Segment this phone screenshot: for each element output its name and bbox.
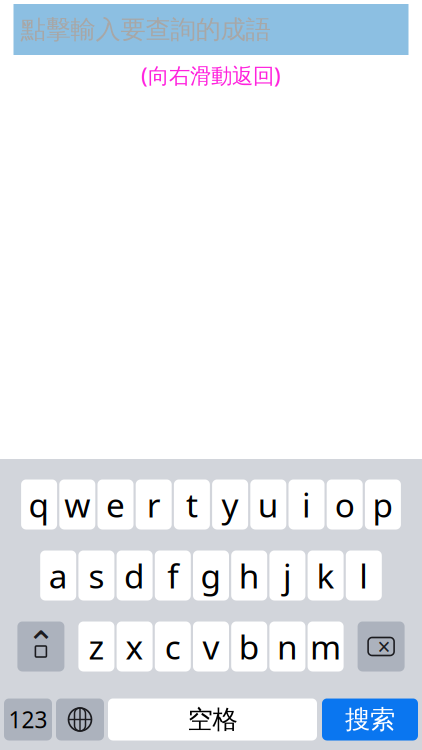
- staticText: c: [165, 624, 181, 669]
- staticText: b: [239, 624, 260, 669]
- staticText: x: [126, 624, 144, 669]
- button[interactable]: 搜索: [322, 698, 418, 740]
- staticText: r: [147, 482, 161, 527]
- staticText: u: [258, 482, 279, 527]
- staticText: (向右滑動返回): [141, 61, 281, 89]
- staticText: w: [64, 482, 90, 527]
- staticText: z: [88, 624, 104, 669]
- button[interactable]: g: [193, 550, 229, 600]
- button[interactable]: d: [117, 550, 153, 600]
- staticText: e: [106, 482, 125, 527]
- staticText: k: [317, 553, 335, 598]
- button[interactable]: n: [269, 621, 305, 671]
- staticText: v: [202, 624, 219, 669]
- button[interactable]: a: [40, 550, 76, 600]
- button[interactable]: v: [193, 621, 229, 671]
- staticText: 搜索: [345, 704, 395, 735]
- button[interactable]: Delete: [358, 621, 405, 671]
- staticText: p: [372, 482, 393, 527]
- button[interactable]: 點擊輸入要查詢的成語: [13, 4, 408, 55]
- button[interactable]: i: [288, 479, 324, 529]
- button[interactable]: l: [346, 550, 382, 600]
- button[interactable]: x: [117, 621, 153, 671]
- staticText: i: [302, 482, 311, 527]
- button[interactable]: q: [21, 479, 57, 529]
- button[interactable]: Shift: [17, 621, 64, 671]
- button[interactable]: Next keyboard: [56, 698, 104, 740]
- button[interactable]: h: [231, 550, 267, 600]
- staticText: s: [88, 553, 104, 598]
- staticText: a: [49, 553, 68, 598]
- staticText: 點擊輸入要查詢的成語: [20, 14, 270, 45]
- button[interactable]: e: [97, 479, 133, 529]
- button[interactable]: w: [59, 479, 95, 529]
- button[interactable]: b: [231, 621, 267, 671]
- button[interactable]: u: [250, 479, 286, 529]
- staticText: f: [167, 553, 178, 598]
- staticText: q: [29, 482, 50, 527]
- button[interactable]: 空格: [108, 698, 317, 740]
- staticText: d: [124, 553, 145, 598]
- staticText: 空格: [187, 704, 237, 735]
- staticText: t: [186, 482, 198, 527]
- staticText: j: [283, 553, 292, 598]
- staticText: g: [200, 553, 221, 598]
- staticText: l: [359, 553, 368, 598]
- staticText: ×: [378, 631, 391, 661]
- button[interactable]: t: [174, 479, 210, 529]
- button[interactable]: p: [365, 479, 401, 529]
- button[interactable]: o: [327, 479, 363, 529]
- button[interactable]: r: [136, 479, 172, 529]
- staticText: y: [222, 482, 239, 527]
- staticText: o: [335, 482, 355, 527]
- staticText: n: [277, 624, 298, 669]
- button[interactable]: y: [212, 479, 248, 529]
- button[interactable]: j: [269, 550, 305, 600]
- button[interactable]: 123: [4, 698, 52, 740]
- button[interactable]: m: [308, 621, 344, 671]
- button[interactable]: c: [155, 621, 191, 671]
- button[interactable]: k: [308, 550, 344, 600]
- button[interactable]: z: [78, 621, 114, 671]
- staticText: 123: [8, 704, 47, 734]
- staticText: h: [239, 553, 260, 598]
- staticText: m: [310, 624, 341, 669]
- button[interactable]: s: [78, 550, 114, 600]
- button[interactable]: f: [155, 550, 191, 600]
- staticText: ⌃: [26, 624, 55, 663]
